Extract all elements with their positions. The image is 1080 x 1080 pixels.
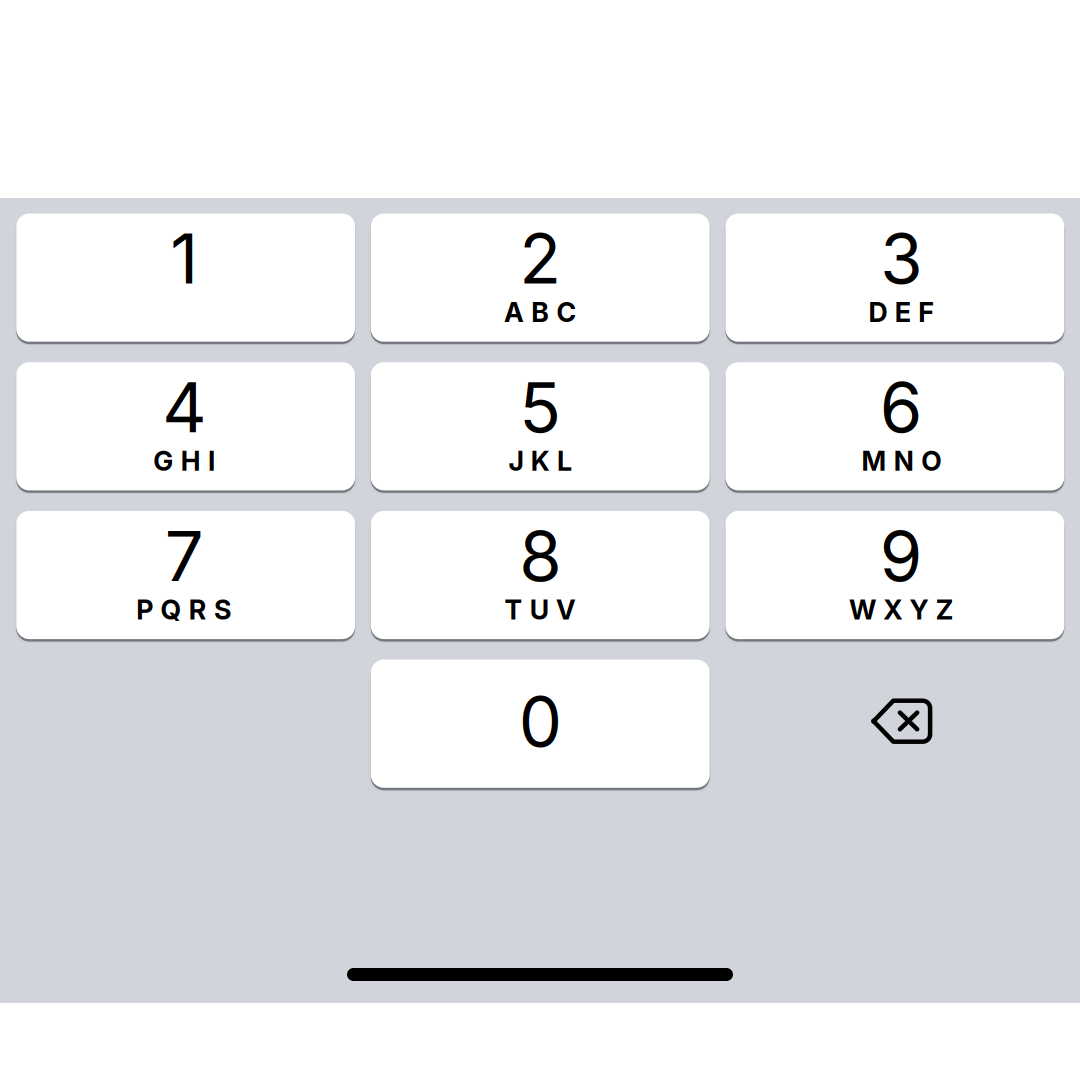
staticText: 1 (170, 217, 198, 300)
staticText: 0 (519, 680, 562, 763)
staticText: 7 (165, 514, 204, 597)
staticText: 8 (519, 514, 561, 597)
staticText: TUV (504, 593, 576, 626)
staticText: WXYZ (849, 593, 954, 626)
staticText: 9 (880, 514, 923, 597)
button[interactable]: 6 (725, 362, 1064, 490)
staticText: PQRS (136, 593, 232, 626)
button[interactable]: 3 (725, 213, 1064, 342)
staticText: 3 (880, 217, 922, 300)
button[interactable]: 0 (371, 660, 710, 788)
staticText: 4 (162, 366, 206, 449)
button[interactable]: 4 (16, 362, 355, 490)
button[interactable]: 2 (371, 213, 710, 342)
staticText: GHI (153, 445, 215, 477)
button[interactable]: Delete (725, 660, 1064, 788)
staticText: 5 (519, 366, 561, 449)
staticText: 6 (880, 366, 923, 449)
button[interactable]: 9 (725, 511, 1064, 639)
button[interactable]: 7 (16, 511, 355, 639)
button[interactable]: 5 (371, 362, 710, 490)
staticText: 2 (519, 217, 561, 300)
button[interactable]: 1 (16, 213, 355, 342)
staticText: MNO (862, 445, 941, 477)
staticText: JKL (508, 445, 572, 477)
button[interactable]: 8 (371, 511, 710, 639)
staticText: ABC (504, 296, 577, 328)
staticText: DEF (869, 296, 934, 328)
